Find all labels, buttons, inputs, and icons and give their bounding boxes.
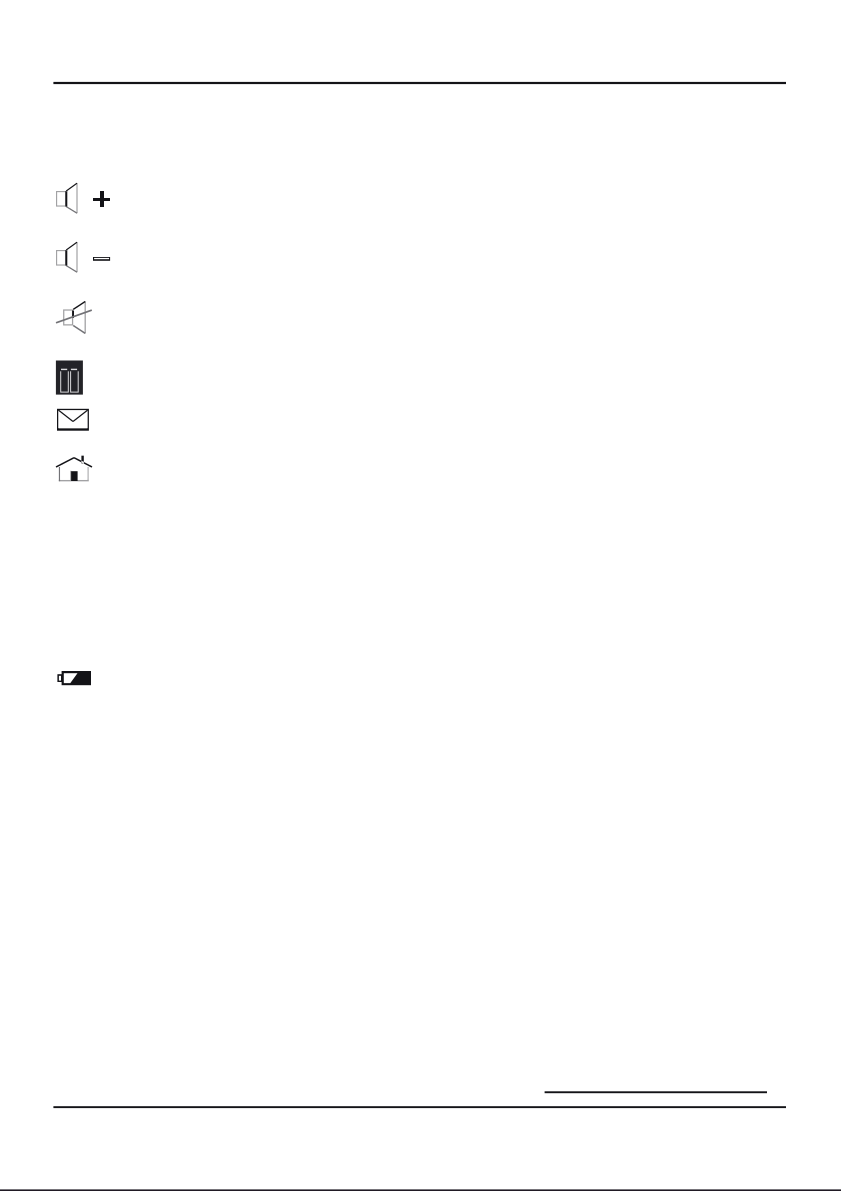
button[interactable]: Mute xyxy=(62,301,108,337)
button[interactable]: Increase volume xyxy=(93,191,111,208)
button[interactable]: Decrease volume xyxy=(93,257,111,261)
button[interactable]: Volume down xyxy=(55,242,77,273)
button[interactable]: Volume up xyxy=(55,183,77,214)
button[interactable]: Home xyxy=(54,455,92,483)
button[interactable]: Batteries xyxy=(56,360,83,395)
button[interactable]: Battery level xyxy=(57,671,92,687)
button[interactable]: Mail xyxy=(57,409,90,432)
